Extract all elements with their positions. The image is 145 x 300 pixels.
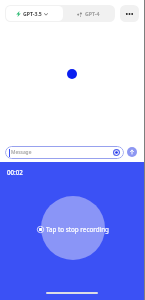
button[interactable]: GPT-4 <box>63 6 114 21</box>
staticText: Message <box>11 149 32 156</box>
other: Voice input <box>113 149 120 156</box>
button[interactable]: Message <box>9 146 120 159</box>
staticText: 00:02 <box>7 168 23 176</box>
button[interactable]: More options <box>120 5 139 22</box>
button[interactable]: Send <box>127 147 137 157</box>
staticText: GPT-4 <box>85 10 100 17</box>
staticText: Tap to stop recording <box>46 225 109 234</box>
button[interactable]: GPT-3.5 <box>6 6 63 21</box>
button[interactable]: Tap to stop recording <box>37 225 109 234</box>
staticText: GPT-3.5 <box>23 10 42 17</box>
